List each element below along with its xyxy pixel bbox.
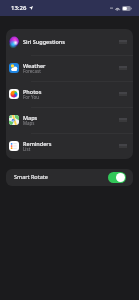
staticText: Maps [23, 120, 35, 126]
other: Reorder [119, 66, 127, 70]
button[interactable]: Maps [6, 107, 133, 133]
staticText: List [23, 146, 31, 152]
other: Reorder [119, 40, 127, 44]
staticText: Weather [23, 62, 46, 69]
button[interactable]: Reminders [6, 133, 133, 159]
staticText: 13:26 [11, 4, 27, 12]
staticText: Photos [23, 88, 42, 95]
button[interactable]: Photos [6, 81, 133, 107]
button[interactable]: Smart Rotate toggle [108, 172, 126, 183]
staticText: Smart Rotate [14, 173, 48, 180]
button[interactable]: Smart Rotate [6, 169, 133, 186]
staticText: Maps [23, 114, 38, 121]
other: Reorder [119, 118, 127, 122]
staticText: For You [23, 94, 39, 100]
staticText: Forecast [23, 68, 41, 74]
other: Reorder [119, 92, 127, 96]
button[interactable]: Siri Suggestions [6, 29, 133, 55]
button[interactable]: Weather [6, 55, 133, 81]
staticText: Reminders [23, 140, 52, 147]
staticText: Siri Suggestions [23, 38, 65, 45]
other: Reorder [119, 144, 127, 148]
